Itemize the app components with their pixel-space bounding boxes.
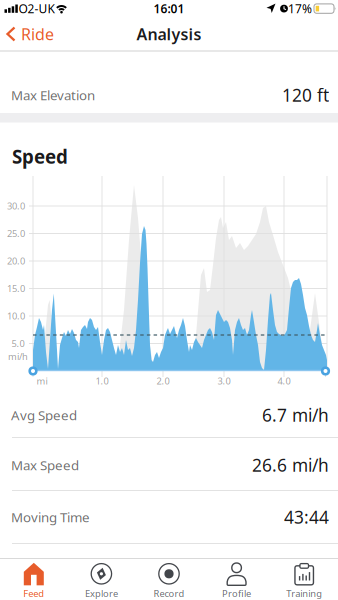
staticText: Profile (222, 587, 251, 600)
staticText: Record (153, 587, 184, 600)
staticText: 2.0 (156, 375, 169, 387)
staticText: Explore (85, 587, 118, 600)
staticText: 5.0 (11, 337, 24, 350)
button[interactable]: Training (272, 561, 336, 600)
button[interactable]: Record (137, 561, 201, 600)
staticText: 30.0 (7, 200, 25, 212)
button[interactable]: Explore (69, 561, 133, 600)
button[interactable]: Feed (2, 561, 66, 600)
staticText: 26.6 mi/h (252, 453, 329, 476)
staticText: 16:01 (153, 1, 184, 16)
staticText: 4.0 (277, 375, 290, 387)
staticText: Feed (23, 587, 44, 600)
staticText: Ride (21, 23, 54, 45)
button[interactable]: Profile (205, 561, 269, 600)
staticText: Speed (12, 144, 68, 169)
staticText: Avg Speed (11, 406, 77, 424)
staticText: 1.0 (95, 375, 108, 387)
button[interactable]: Back (2, 23, 58, 45)
staticText: 20.0 (7, 255, 25, 267)
staticText: 10.0 (7, 310, 25, 322)
staticText: 6.7 mi/h (262, 403, 329, 426)
staticText: Analysis (136, 23, 201, 45)
staticText: 17% (288, 1, 312, 16)
staticText: 25.0 (7, 227, 25, 240)
staticText: Max Elevation (11, 86, 95, 104)
staticText: Training (286, 587, 322, 600)
staticText: 43:44 (284, 505, 329, 528)
staticText: Max Speed (11, 456, 79, 474)
staticText: mi (36, 375, 47, 387)
staticText: O2-UK (18, 1, 54, 16)
staticText: 120 ft (282, 83, 329, 106)
staticText: 3.0 (217, 375, 230, 387)
staticText: Moving Time (11, 508, 90, 526)
staticText: mi/h (8, 350, 28, 363)
staticText: 15.0 (7, 282, 25, 295)
